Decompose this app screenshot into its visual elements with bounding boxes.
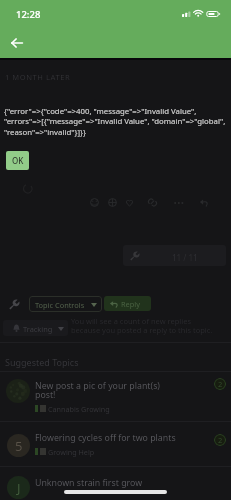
staticText: 5 [15,437,23,455]
button[interactable]: 5 [0,422,231,466]
staticText: 11 / 11 [172,252,198,263]
staticText: Reply [121,299,140,309]
staticText: OK [12,155,24,166]
staticText: post! [35,389,56,401]
staticText: because you posted a reply to this topic… [71,325,213,335]
button[interactable]: Tracking [3,320,68,336]
staticText: Flowering cycles off for two plants [35,432,176,444]
staticText: J [17,479,21,497]
staticText: 12:28 [16,8,41,21]
staticText: 2 [218,435,223,445]
staticText: Unknown strain first grow [35,477,143,489]
staticText: You will see a count of new replies [71,316,191,326]
staticText: 2 [218,379,223,389]
button[interactable]: Topic Controls [29,296,102,312]
staticText: Cannabis Growing [48,404,110,414]
staticText: 1 MONTH LATER [5,72,71,82]
button[interactable]: Reply [104,296,151,311]
button[interactable]: OK [6,151,29,170]
staticText: Growing Help [48,447,95,457]
button[interactable]: Back [5,31,28,54]
staticText: "errors"=>[{"message"=>"Invalid Value", … [4,116,226,127]
staticText: {"error"=>{"code"=>400, "message"=>"Inva… [4,106,197,117]
button[interactable]: New post a pic of your plant(s) [0,372,231,421]
staticText: New post a pic of your plant(s) [35,380,161,392]
button[interactable]: J [0,467,231,500]
button[interactable]: Topic admin actions [5,295,24,313]
staticText: Tracking [23,324,53,334]
button[interactable]: Topic progress 11 of 11 [123,245,226,266]
staticText: Topic Controls [35,300,85,310]
staticText: "reason"=>"invalid"}]}} [4,127,86,138]
staticText: Suggested Topics [5,356,79,368]
